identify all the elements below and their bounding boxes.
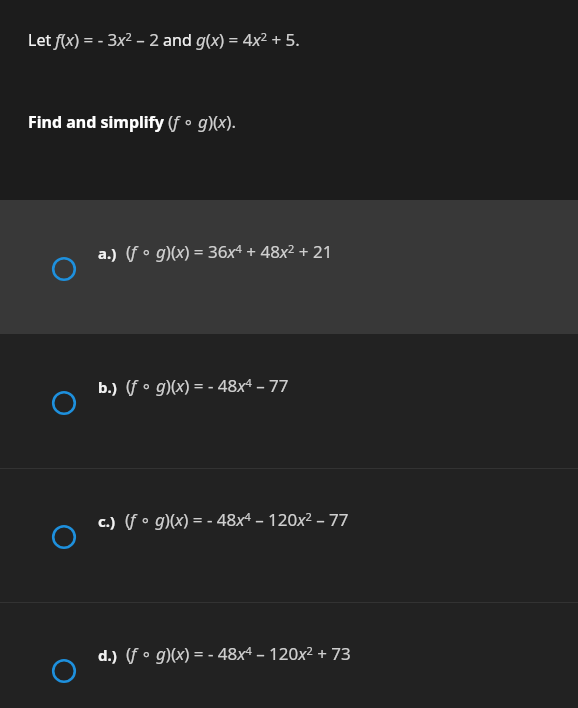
staticText: d.) [98,645,117,665]
button[interactable]: Select option c [0,468,578,602]
button[interactable]: Select option a [0,200,578,334]
staticText: c.) [98,511,116,531]
staticText: (f ∘ g)(x) = - 48x4 – 120x2 – 77 [125,508,349,531]
other: Select option c [51,524,77,550]
staticText: Find and simplify (f ∘ g)(x). [28,110,236,133]
staticText: Let f(x) = - 3x2 – 2 and g(x) = 4x2 + 5. [28,28,300,51]
other: Select option d [51,658,77,684]
staticText: a.) [98,243,117,263]
other: Select option a [51,256,77,282]
other: Select option b [51,390,77,416]
staticText: (f ∘ g)(x) = 36x4 + 48x2 + 21 [126,240,333,263]
button[interactable]: Select option d [0,602,578,708]
staticText: b.) [98,377,117,397]
button[interactable]: Select option b [0,334,578,468]
staticText: (f ∘ g)(x) = - 48x4 – 120x2 + 73 [126,642,351,665]
staticText: (f ∘ g)(x) = - 48x4 – 77 [126,374,289,397]
